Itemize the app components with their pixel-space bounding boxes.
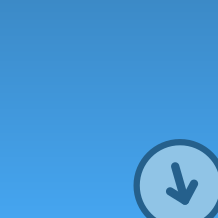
button[interactable]: Download [0,0,218,218]
